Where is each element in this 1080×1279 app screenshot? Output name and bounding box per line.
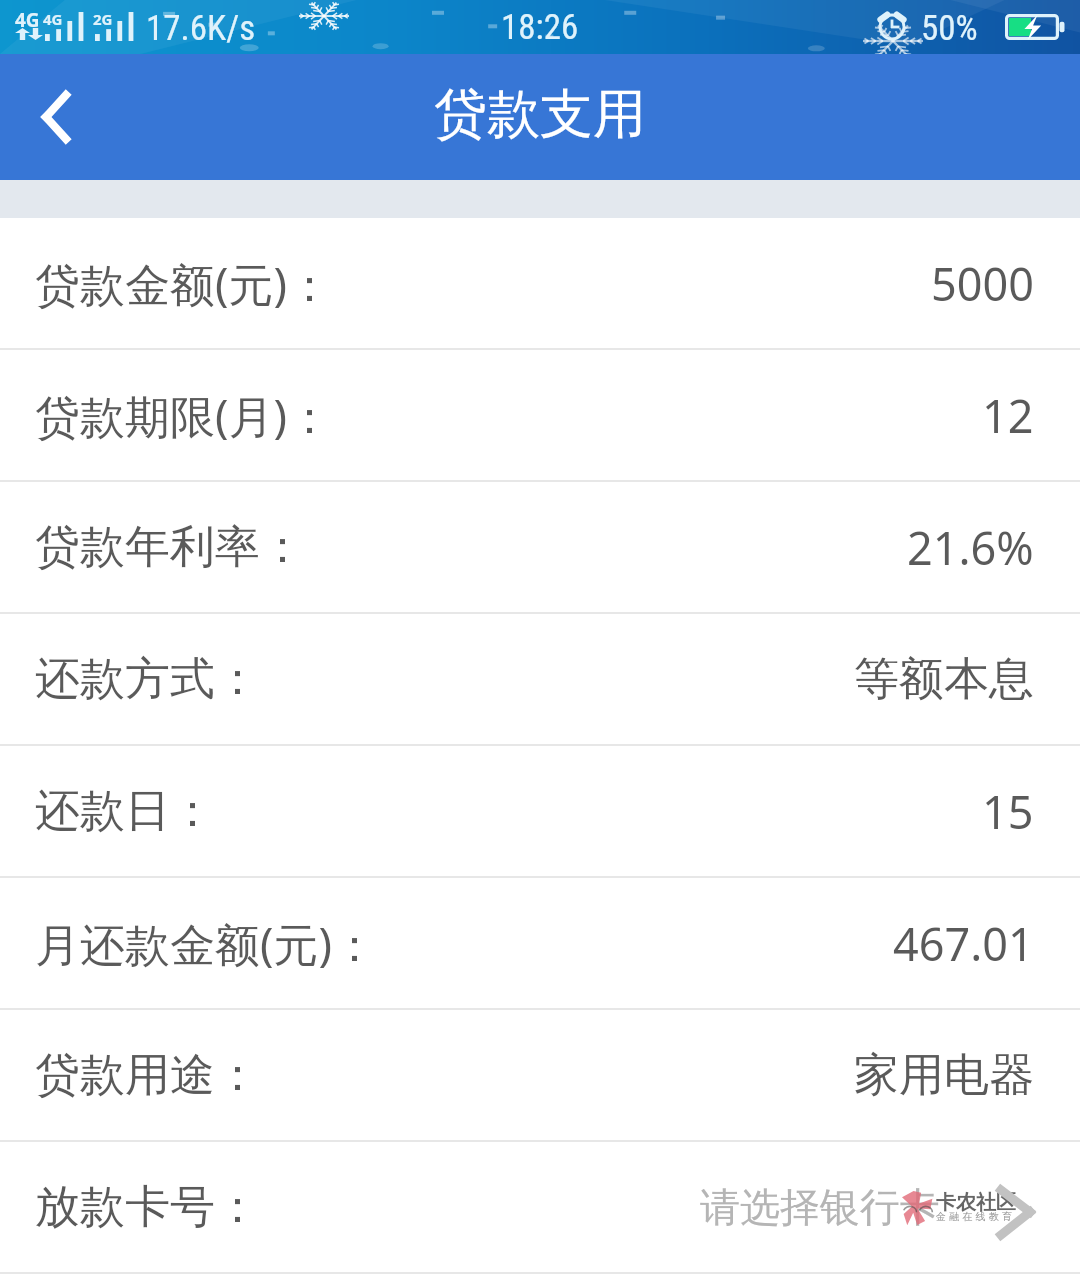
staticText: 月还款金额(元)：	[35, 913, 378, 974]
staticText: 2G	[93, 9, 113, 29]
staticText: 4G	[15, 7, 40, 33]
button[interactable]: 月还款金额(元)：	[0, 878, 1080, 1008]
button[interactable]: Back	[0, 62, 110, 172]
staticText: 贷款支用	[434, 81, 646, 148]
staticText: 卡农社区	[936, 1190, 1016, 1215]
staticText: 贷款用途：	[35, 1047, 260, 1104]
staticText: 17.6K/s	[146, 8, 256, 49]
button[interactable]: 贷款用途：	[0, 1010, 1080, 1140]
staticText: 等额本息	[854, 651, 1034, 708]
staticText: 21.6%	[907, 517, 1034, 578]
staticText: 还款方式：	[35, 651, 260, 708]
button[interactable]: 贷款金额(元)：	[0, 218, 1080, 348]
staticText: 467.01	[893, 913, 1034, 974]
button[interactable]: 还款方式：	[0, 614, 1080, 744]
staticText: 5000	[931, 253, 1034, 314]
staticText: 12	[982, 385, 1034, 446]
button[interactable]: 还款日：	[0, 746, 1080, 876]
button[interactable]: 贷款年利率：	[0, 482, 1080, 612]
button[interactable]: 放款卡号：	[0, 1142, 1080, 1272]
staticText: 还款日：	[35, 783, 215, 840]
button[interactable]: 贷款期限(月)：	[0, 350, 1080, 480]
staticText: 金融在线教育	[936, 1210, 1016, 1223]
staticText: 放款卡号：	[35, 1179, 260, 1236]
staticText: 18:26	[501, 7, 579, 48]
staticText: 4G	[43, 9, 63, 29]
staticText: 家用电器	[854, 1047, 1034, 1104]
staticText: 15	[982, 781, 1034, 842]
staticText: 贷款期限(月)：	[35, 385, 333, 446]
staticText: 请选择银行卡	[700, 1182, 940, 1232]
staticText: 贷款金额(元)：	[35, 253, 333, 314]
staticText: 贷款年利率：	[35, 519, 305, 576]
staticText: 50%	[921, 8, 978, 49]
